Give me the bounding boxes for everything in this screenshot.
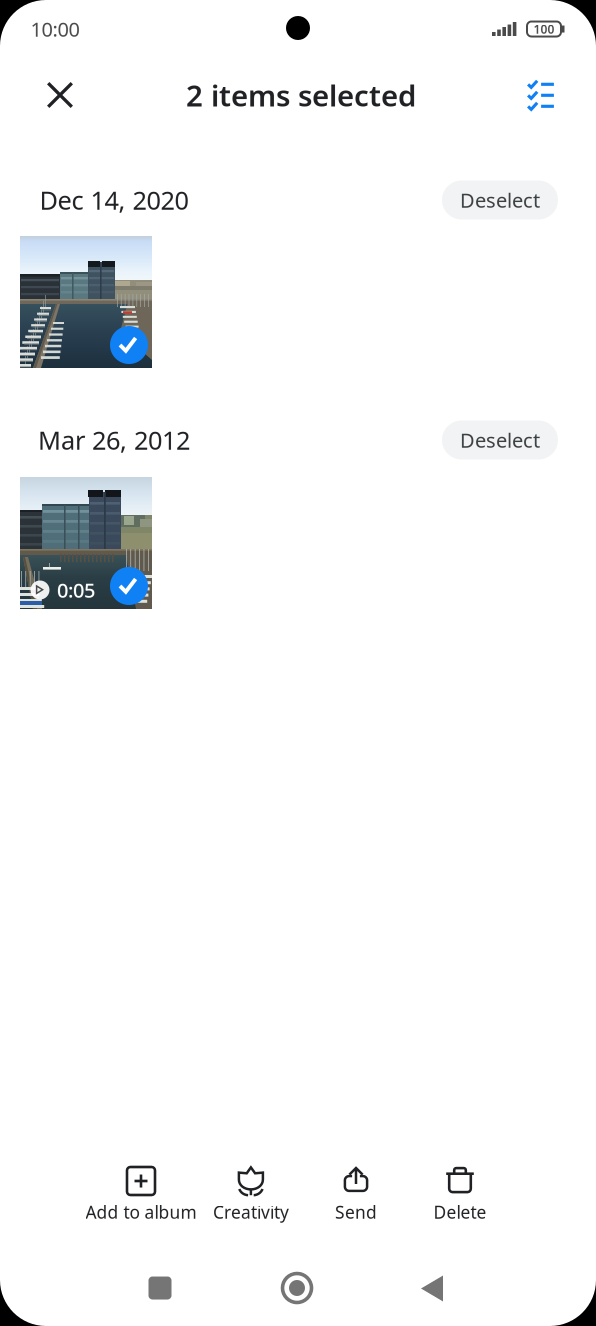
button[interactable]: Add to album — [79, 1163, 203, 1229]
button[interactable]: Deselect — [442, 420, 558, 459]
staticText: Add to album — [85, 1200, 196, 1223]
button[interactable]: Home — [249, 1262, 345, 1314]
button[interactable]: Creativity — [189, 1163, 313, 1229]
staticText: Creativity — [213, 1200, 289, 1223]
button[interactable]: Back — [384, 1262, 480, 1314]
button[interactable]: Select all — [504, 58, 578, 132]
button[interactable]: Deselect — [442, 180, 558, 219]
staticText: 100 — [533, 21, 554, 37]
staticText: Delete — [433, 1200, 486, 1223]
staticText: Dec 14, 2020 — [39, 183, 188, 217]
staticText: 2 items selected — [186, 75, 416, 114]
button[interactable]: Delete — [398, 1163, 522, 1229]
button[interactable]: Close — [23, 58, 97, 132]
staticText: Mar 26, 2012 — [38, 423, 190, 457]
staticText: 0:05 — [57, 577, 95, 603]
button[interactable]: 0:05 — [20, 477, 152, 609]
button[interactable] — [20, 236, 152, 368]
button[interactable]: Send — [294, 1163, 418, 1229]
staticText: Send — [335, 1200, 377, 1223]
staticText: Deselect — [460, 427, 540, 453]
button[interactable]: Recents — [112, 1262, 208, 1314]
staticText: 10:00 — [30, 16, 79, 42]
staticText: Deselect — [460, 187, 540, 213]
